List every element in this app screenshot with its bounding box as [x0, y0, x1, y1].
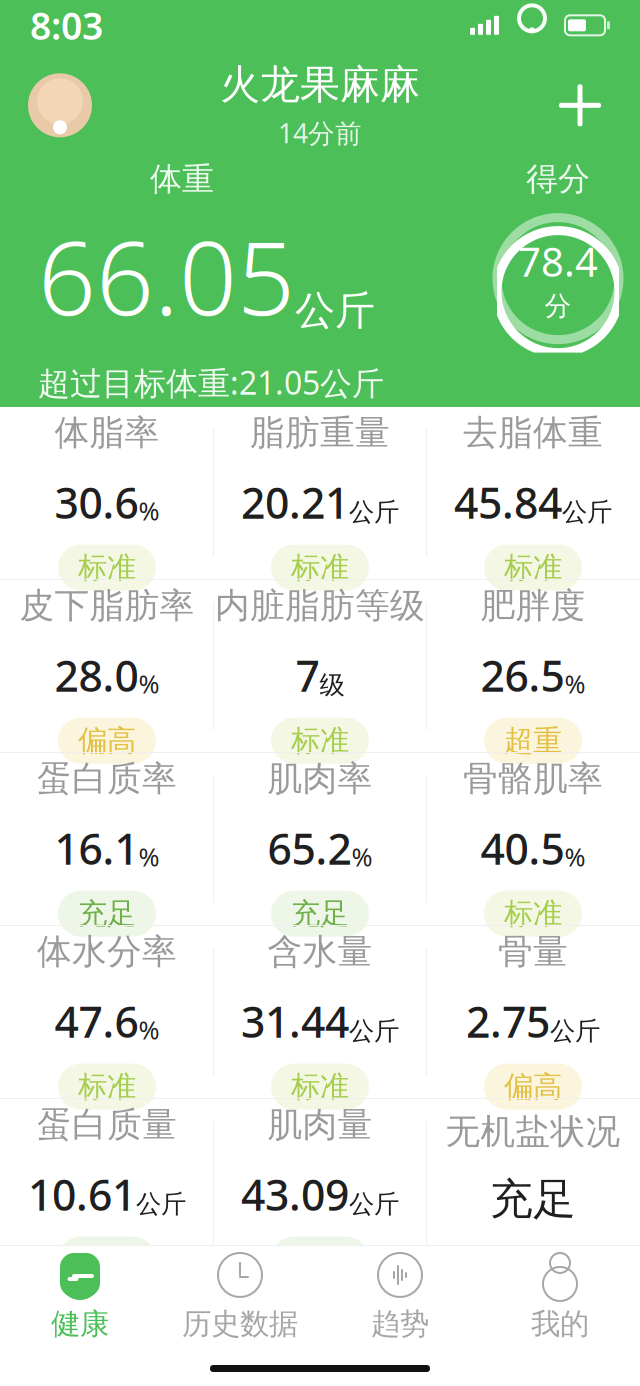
staticText: 公斤 [349, 496, 399, 528]
button[interactable]: 趋势 [320, 1248, 480, 1344]
button[interactable]: 健康 [0, 1248, 160, 1344]
button[interactable]: 肌肉量 [214, 1099, 426, 1271]
staticText: 公斤 [349, 1015, 399, 1047]
staticText: 趋势 [371, 1306, 429, 1342]
button[interactable]: 我的 [480, 1248, 640, 1344]
staticText: 超过目标体重:21.05公斤 [38, 361, 384, 404]
staticText: 标准 [78, 1069, 136, 1105]
staticText: 65.2 [267, 820, 351, 877]
staticText: 历史数据 [182, 1306, 298, 1342]
staticText: 14分前 [278, 115, 362, 151]
staticText: 标准 [504, 550, 562, 586]
staticText: 皮下脂肪率 [19, 584, 194, 627]
staticText: 体脂率 [54, 411, 159, 454]
staticText: 7 [295, 647, 319, 704]
staticText: 标准 [291, 550, 349, 586]
button[interactable]: 皮下脂肪率 [1, 580, 213, 752]
staticText: % [138, 667, 159, 701]
staticText: 公斤 [349, 1188, 399, 1220]
button[interactable]: 肌肉率 [214, 753, 426, 925]
staticText: 骨量 [498, 930, 568, 973]
staticText: 内脏脂肪等级 [215, 584, 425, 627]
staticText: 2.75 [466, 993, 550, 1050]
staticText: 得分 [526, 159, 590, 199]
button[interactable]: 蛋白质量 [1, 1099, 213, 1271]
button[interactable]: 历史数据 [160, 1248, 320, 1344]
staticText: 骨骼肌率 [463, 757, 603, 800]
staticText: 火龙果麻麻 [220, 60, 420, 109]
staticText: 体重 [150, 159, 214, 199]
staticText: 分 [544, 290, 571, 323]
staticText: 28.0 [54, 647, 138, 704]
staticText: 充足 [291, 1242, 349, 1278]
staticText: % [138, 1013, 159, 1047]
staticText: 公斤 [550, 1015, 600, 1047]
staticText: 含水量 [267, 930, 372, 973]
staticText: 标准 [291, 723, 349, 759]
staticText: 无机盐状况 [445, 1110, 620, 1153]
staticText: 20.21 [241, 474, 349, 531]
button[interactable]: 含水量 [214, 926, 426, 1098]
staticText: 8:03 [30, 0, 103, 50]
button[interactable]: 内脏脂肪等级 [214, 580, 426, 752]
staticText: 偏高 [78, 723, 136, 759]
staticText: 充足 [490, 1173, 576, 1225]
staticText: 40.5 [480, 820, 564, 877]
staticText: 66.05 [38, 209, 295, 343]
staticText: 31.44 [241, 993, 349, 1050]
button[interactable]: 蛋白质率 [1, 753, 213, 925]
button[interactable]: 无机盐状况 [427, 1099, 639, 1271]
staticText: 肥胖度 [480, 584, 585, 627]
staticText: % [138, 840, 159, 874]
staticText: 16.1 [54, 820, 138, 877]
staticText: 蛋白质量 [37, 1103, 177, 1146]
button[interactable]: 骨骼肌率 [427, 753, 639, 925]
staticText: 30.6 [54, 474, 138, 531]
staticText: 健康 [51, 1306, 109, 1342]
button[interactable]: 体脂率 [1, 407, 213, 579]
button[interactable]: 体水分率 [1, 926, 213, 1098]
staticText: 肌肉率 [267, 757, 372, 800]
staticText: % [138, 494, 159, 528]
staticText: 超重 [504, 723, 562, 759]
button[interactable]: Profile photo [28, 73, 92, 137]
staticText: 充足 [78, 896, 136, 932]
staticText: 公斤 [295, 286, 375, 335]
staticText: 充足 [78, 1242, 136, 1278]
button[interactable]: Add [548, 73, 612, 137]
staticText: 43.09 [241, 1166, 349, 1223]
staticText: 78.4 [518, 235, 598, 288]
staticText: 26.5 [480, 647, 564, 704]
staticText: 标准 [291, 1069, 349, 1105]
button[interactable]: 去脂体重 [427, 407, 639, 579]
staticText: % [564, 840, 585, 874]
button[interactable]: 脂肪重量 [214, 407, 426, 579]
staticText: 10.61 [28, 1166, 136, 1223]
staticText: 级 [319, 669, 344, 701]
staticText: 蛋白质率 [37, 757, 177, 800]
staticText: 公斤 [562, 496, 612, 528]
staticText: 肌肉量 [267, 1103, 372, 1146]
staticText: 45.84 [454, 474, 562, 531]
staticText: 标准 [504, 896, 562, 932]
staticText: 脂肪重量 [250, 411, 390, 454]
staticText: 偏高 [504, 1069, 562, 1105]
staticText: 充足 [291, 896, 349, 932]
staticText: 47.6 [54, 993, 138, 1050]
staticText: 标准 [78, 550, 136, 586]
staticText: % [351, 840, 372, 874]
staticText: 我的 [531, 1306, 589, 1342]
staticText: % [564, 667, 585, 701]
staticText: 体水分率 [37, 930, 177, 973]
staticText: 去脂体重 [463, 411, 603, 454]
button[interactable]: 肥胖度 [427, 580, 639, 752]
staticText: 公斤 [136, 1188, 186, 1220]
button[interactable]: 骨量 [427, 926, 639, 1098]
